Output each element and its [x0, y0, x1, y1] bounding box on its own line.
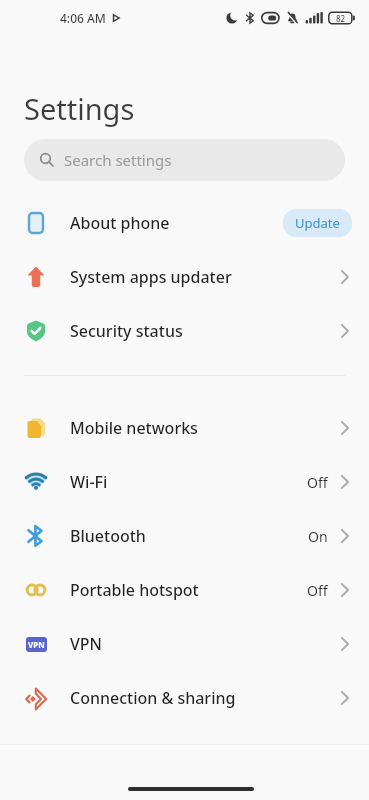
button[interactable]: Update: [283, 209, 352, 237]
button[interactable]: System apps updater: [0, 250, 369, 304]
button[interactable]: Wi-Fi: [0, 455, 369, 509]
button[interactable]: Mobile networks: [0, 401, 369, 455]
staticText: VPN: [28, 639, 45, 650]
staticText: System apps updater: [70, 266, 232, 288]
staticText: Bluetooth: [70, 525, 146, 547]
staticText: Settings: [24, 89, 135, 128]
staticText: Update: [295, 214, 340, 232]
staticText: About phone: [70, 212, 170, 234]
staticText: Off: [307, 581, 328, 600]
staticText: On: [308, 527, 328, 546]
staticText: Portable hotspot: [70, 579, 199, 601]
button[interactable]: VPN: [0, 617, 369, 671]
button[interactable]: Bluetooth: [0, 509, 369, 563]
staticText: VPN: [70, 633, 103, 655]
staticText: Wi-Fi: [70, 471, 108, 493]
staticText: 82: [336, 13, 346, 24]
button[interactable]: About phone: [0, 196, 369, 250]
staticText: Off: [307, 473, 328, 492]
staticText: Connection & sharing: [70, 687, 236, 709]
staticText: Search settings: [64, 150, 172, 170]
staticText: Mobile networks: [70, 417, 198, 439]
staticText: 4:06 AM: [60, 10, 106, 26]
button[interactable]: Connection & sharing: [0, 671, 369, 725]
button[interactable]: Security status: [0, 304, 369, 358]
staticText: Security status: [70, 320, 183, 342]
button[interactable]: Portable hotspot: [0, 563, 369, 617]
button[interactable]: Search settings: [24, 139, 345, 181]
